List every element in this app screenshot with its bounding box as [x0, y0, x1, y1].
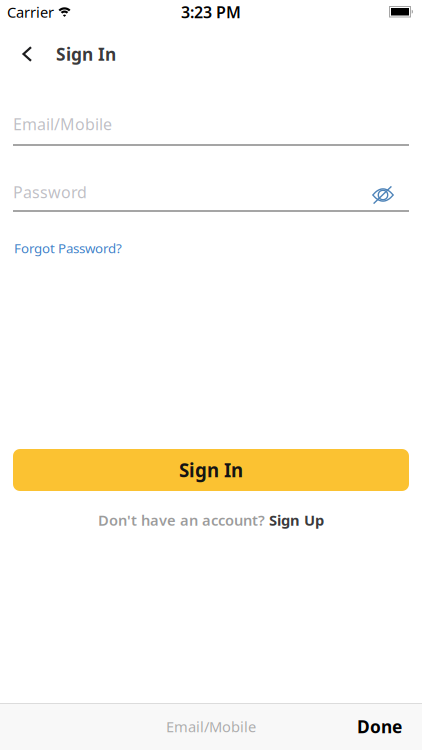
button[interactable]: Done: [357, 715, 422, 738]
button[interactable]: Back: [22, 46, 32, 62]
button[interactable]: Sign In: [13, 449, 409, 491]
button[interactable]: Show password: [372, 180, 394, 204]
staticText: Sign Up: [269, 510, 324, 530]
staticText: Forgot Password?: [14, 239, 122, 257]
staticText: Email/Mobile: [13, 113, 112, 135]
button[interactable]: Sign Up: [269, 510, 324, 530]
staticText: Sign In: [179, 458, 243, 482]
staticText: Carrier: [7, 2, 54, 22]
staticText: Sign In: [56, 42, 116, 65]
staticText: Done: [357, 715, 402, 738]
staticText: 3:23 PM: [181, 1, 241, 23]
staticText: Don't have an account?: [98, 510, 265, 530]
staticText: Email/Mobile: [166, 717, 256, 736]
staticText: Password: [13, 181, 87, 203]
button[interactable]: Forgot Password?: [14, 239, 122, 257]
